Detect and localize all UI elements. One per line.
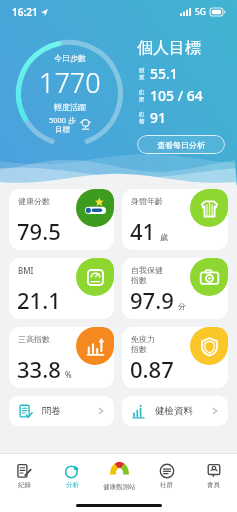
staticText: 問卷	[42, 405, 61, 417]
staticText: 5G	[195, 6, 207, 18]
staticText: 41	[130, 216, 156, 246]
staticText: 55.1	[150, 64, 178, 83]
button[interactable]: 分析	[48, 454, 96, 498]
staticText: 91	[150, 108, 167, 127]
staticText: 5000 步	[49, 115, 76, 125]
staticText: 分析	[66, 481, 79, 489]
staticText: 33.8	[17, 354, 61, 384]
staticText: 三高指數	[18, 334, 50, 344]
staticText: 分	[178, 301, 186, 311]
staticText: 指數	[131, 275, 147, 285]
staticText: 79.5	[17, 216, 61, 246]
staticText: 血	[139, 89, 145, 96]
button[interactable]: 問卷	[9, 396, 114, 426]
staticText: 指數	[131, 344, 147, 354]
button[interactable]: BMI	[9, 258, 114, 319]
staticText: 0.87	[130, 354, 174, 384]
button[interactable]: 免疫力	[122, 327, 228, 388]
staticText: 97.9	[130, 285, 174, 315]
staticText: 今日步數	[54, 53, 86, 63]
staticText: 社群	[160, 481, 173, 489]
staticText: %	[65, 369, 72, 380]
staticText: 105 / 64	[150, 86, 203, 105]
staticText: 個人目標	[137, 38, 201, 58]
staticText: 健康觀測站	[103, 483, 136, 491]
staticText: 歲	[160, 232, 168, 242]
staticText: 血	[139, 111, 145, 118]
staticText: 免疫力	[131, 334, 155, 344]
staticText: 體	[139, 67, 145, 74]
button[interactable]: 健檢資料	[122, 396, 228, 426]
button[interactable]: 健康分數	[9, 189, 114, 250]
staticText: 輕度活躍	[54, 102, 86, 112]
staticText: 21.1	[17, 285, 61, 315]
button[interactable]: 自我保健	[122, 258, 228, 319]
button[interactable]: 查看每日分析	[137, 135, 225, 154]
staticText: 身體年齡	[131, 196, 163, 206]
staticText: 目標	[55, 125, 70, 134]
staticText: 紀錄	[18, 481, 31, 489]
button[interactable]: 三高指數	[9, 327, 114, 388]
staticText: 糖	[139, 118, 145, 125]
button[interactable]: 紀錄	[0, 454, 48, 498]
staticText: BMI	[18, 265, 34, 276]
staticText: 健康分數	[18, 196, 50, 206]
button[interactable]: 會員	[190, 454, 237, 498]
staticText: 會員	[207, 481, 220, 489]
staticText: 1770	[39, 64, 101, 101]
button[interactable]: 社群	[143, 454, 190, 498]
staticText: 壓	[139, 96, 145, 103]
staticText: 自我保健	[131, 265, 163, 275]
button[interactable]: 健康觀測站	[96, 454, 143, 498]
staticText: 重	[139, 74, 145, 81]
staticText: 16:21	[12, 5, 38, 19]
button[interactable]: 身體年齡	[122, 189, 228, 250]
staticText: 查看每日分析	[157, 140, 205, 150]
staticText: 健檢資料	[155, 405, 193, 417]
